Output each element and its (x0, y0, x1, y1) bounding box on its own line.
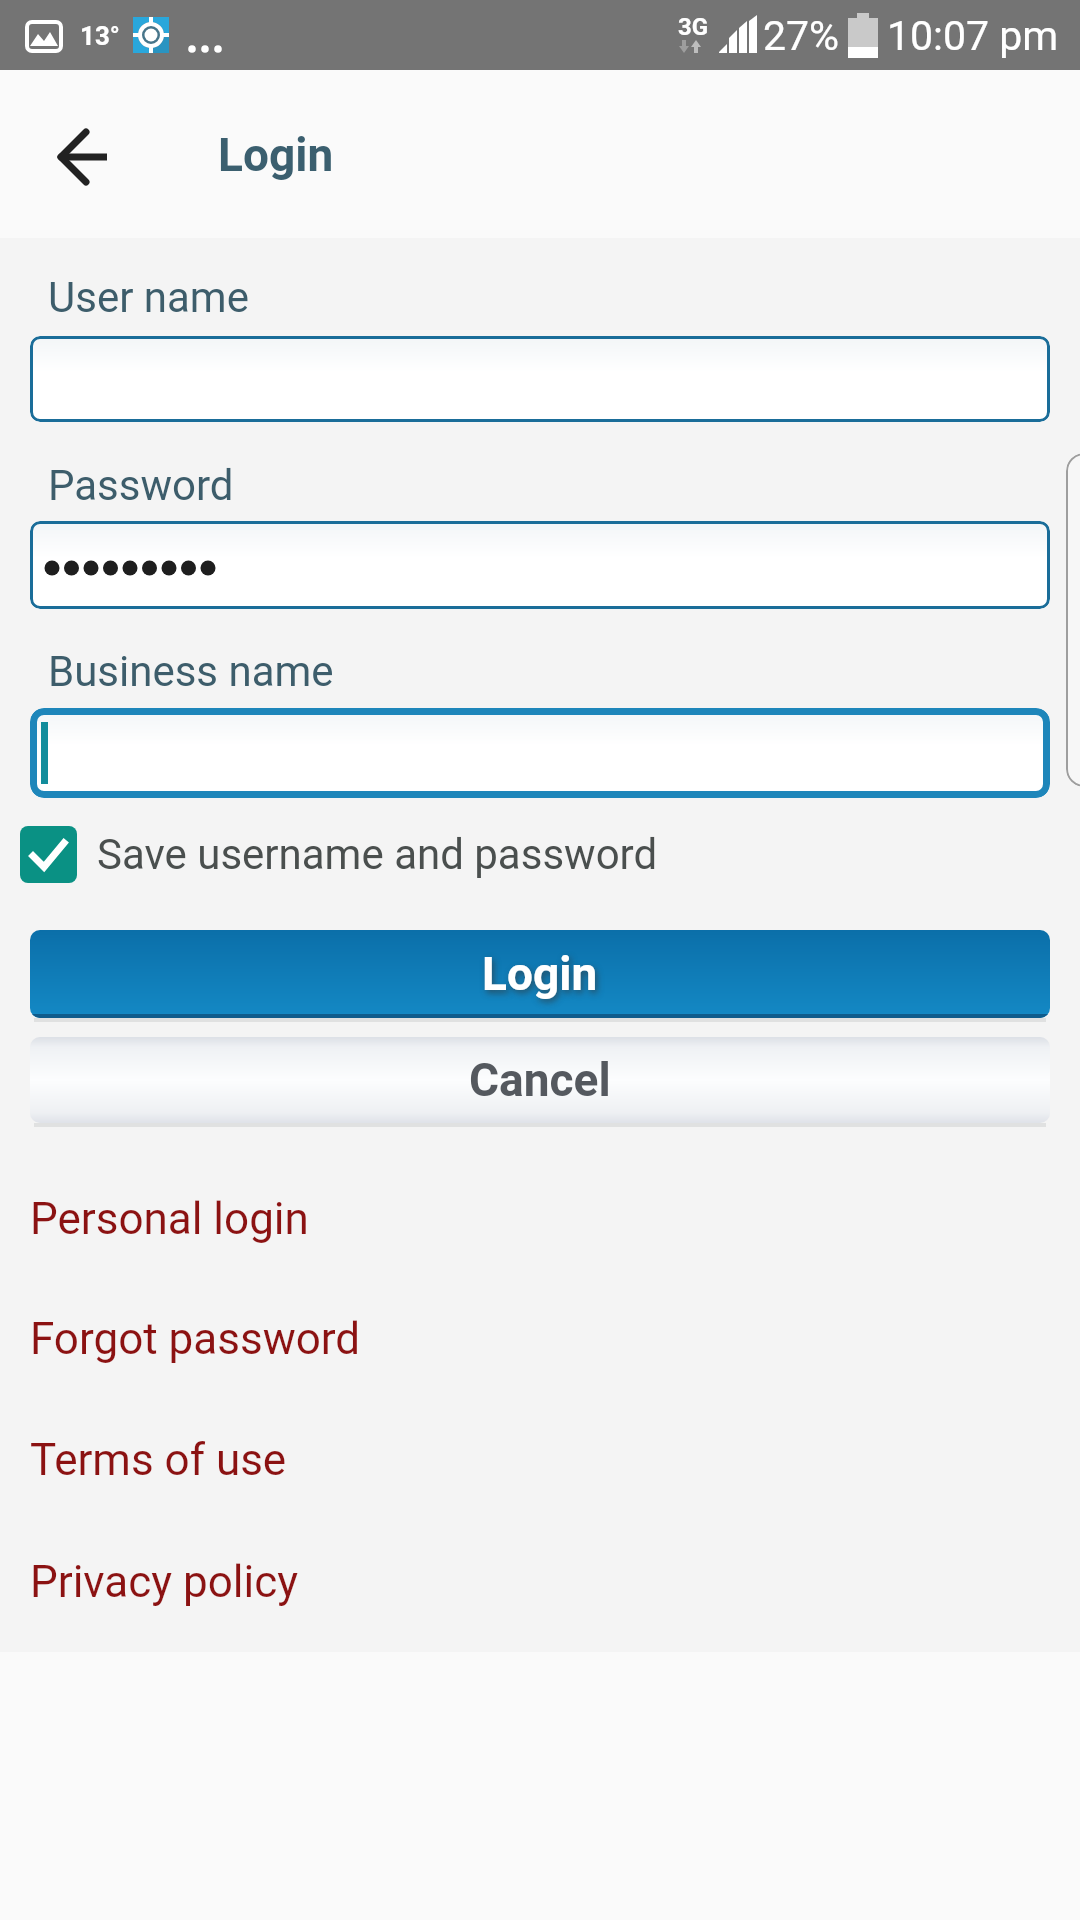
button[interactable]: Forgot password (30, 1313, 361, 1365)
staticText: User name (48, 273, 249, 322)
staticText: Login (218, 128, 334, 182)
staticText: Terms of use (30, 1434, 287, 1486)
staticText: Forgot password (30, 1313, 361, 1365)
staticText: Cancel (469, 1053, 611, 1107)
button[interactable] (30, 521, 1050, 609)
staticText: Save username and password (97, 830, 658, 879)
staticText: Privacy policy (30, 1556, 299, 1608)
button[interactable]: Terms of use (30, 1434, 287, 1486)
staticText: 3G (678, 13, 709, 41)
staticText: 13° (80, 21, 120, 51)
staticText: Password (48, 461, 234, 510)
button[interactable] (30, 708, 1050, 798)
button[interactable] (30, 336, 1050, 422)
staticText: 27% (763, 12, 840, 60)
staticText: Login (482, 947, 598, 1001)
staticText: Business name (48, 647, 334, 696)
button[interactable]: Login (30, 930, 1050, 1018)
staticText: Personal login (30, 1193, 309, 1245)
button[interactable]: Save username and password (20, 826, 658, 883)
button[interactable]: Cancel (30, 1037, 1050, 1123)
staticText: 10:07 pm (887, 12, 1059, 60)
button[interactable]: Personal login (30, 1193, 309, 1245)
button[interactable] (55, 127, 111, 187)
button[interactable]: Privacy policy (30, 1556, 299, 1608)
